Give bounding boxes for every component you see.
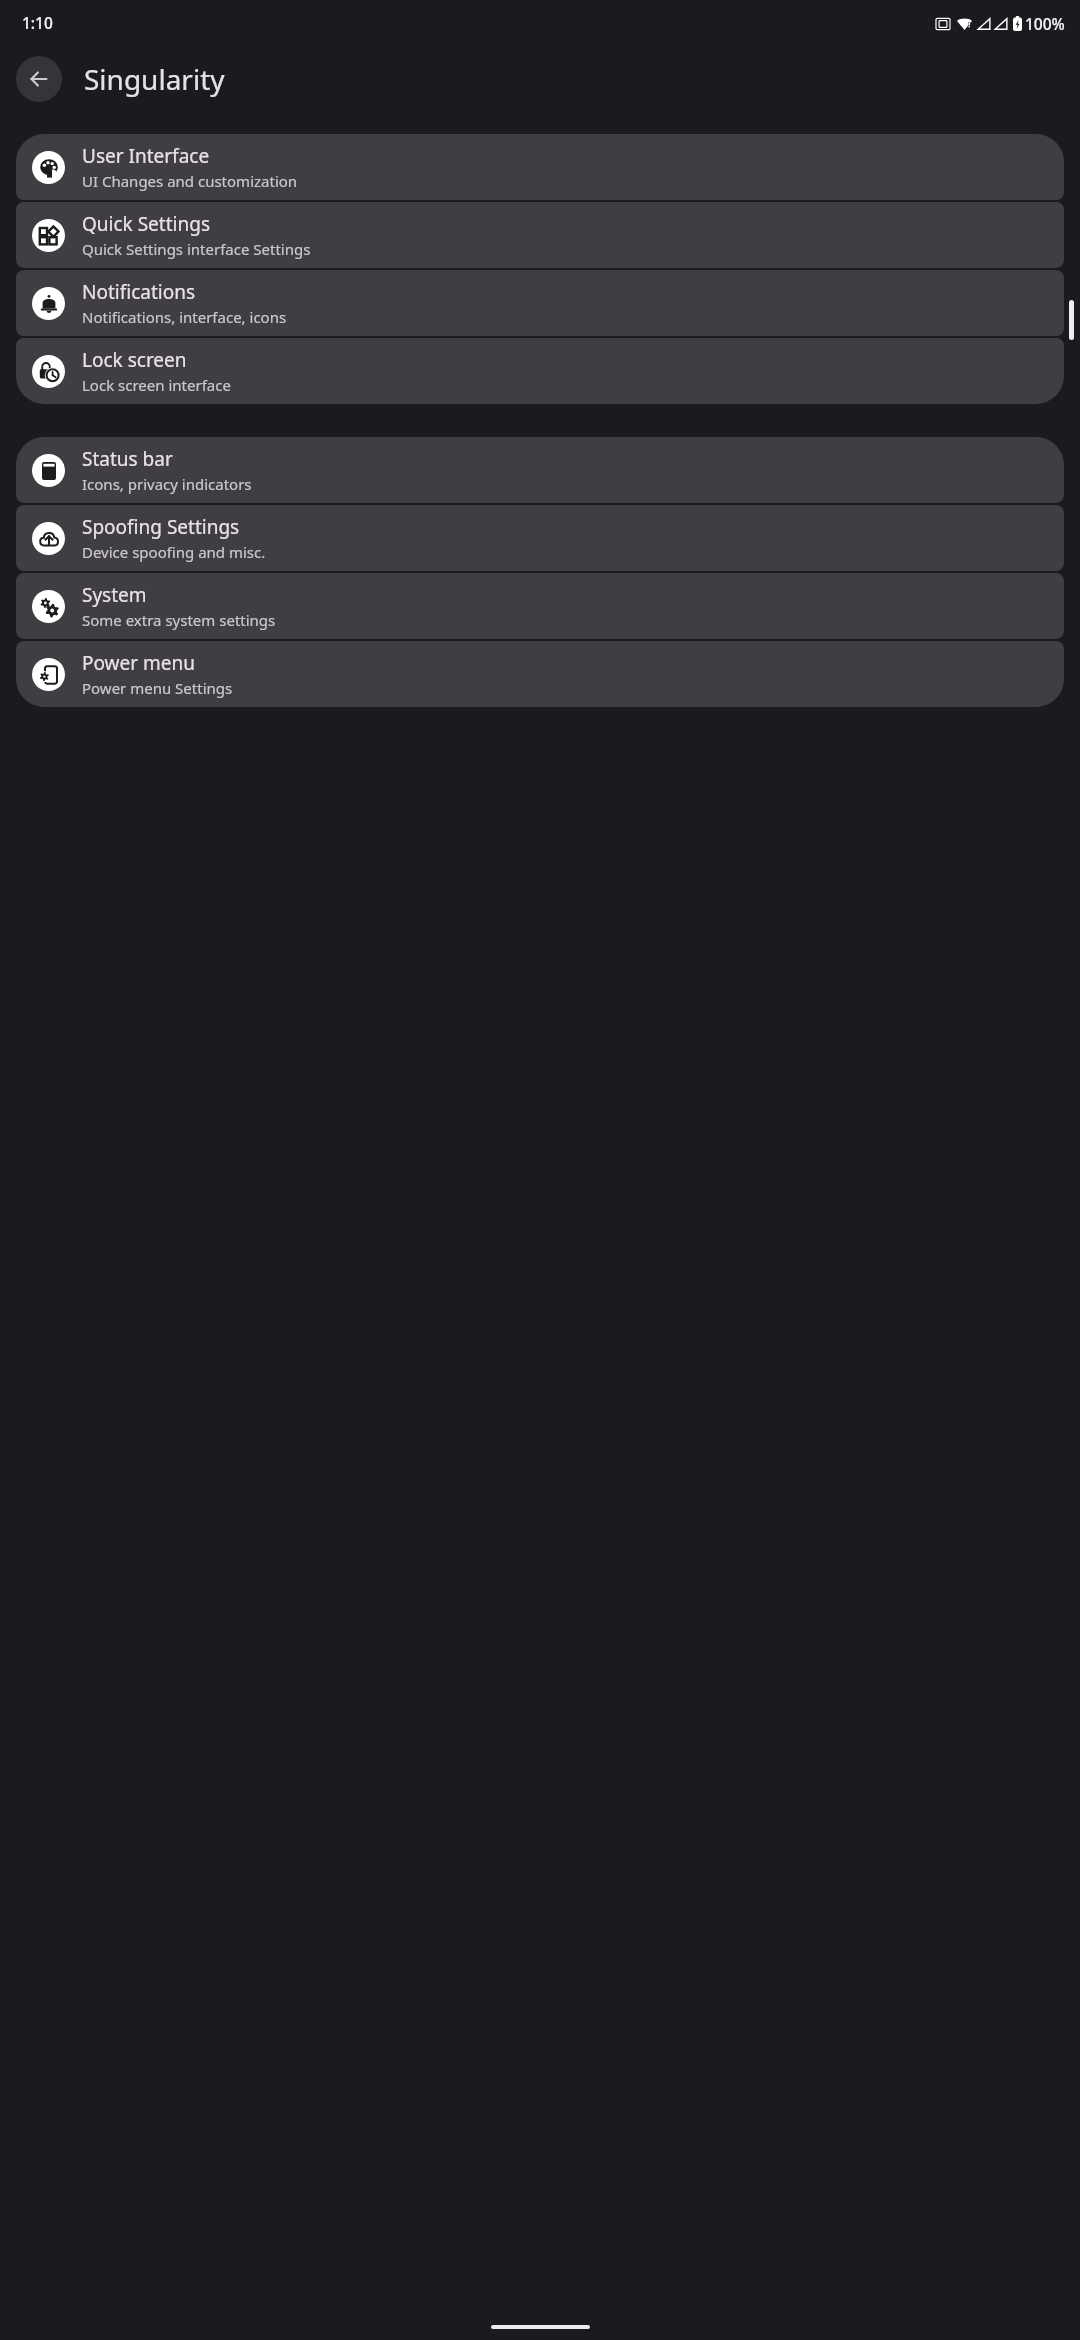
staticText: Status bar — [82, 446, 173, 472]
staticText: User Interface — [82, 143, 210, 169]
staticText: Device spoofing and misc. — [82, 542, 266, 562]
button[interactable]: Spoofing Settings — [16, 505, 1064, 571]
button[interactable]: Quick Settings — [16, 202, 1064, 268]
staticText: Quick Settings interface Settings — [82, 239, 311, 259]
staticText: Some extra system settings — [82, 610, 276, 630]
button[interactable]: Back — [16, 56, 62, 102]
button[interactable]: System — [16, 573, 1064, 639]
staticText: Power menu — [82, 650, 196, 676]
button[interactable]: Notifications — [16, 270, 1064, 336]
button[interactable]: User Interface — [16, 134, 1064, 200]
staticText: UI Changes and customization — [82, 171, 298, 191]
staticText: Lock screen interface — [82, 375, 231, 395]
button[interactable]: Power menu — [16, 641, 1064, 707]
staticText: 1:10 — [22, 12, 53, 33]
staticText: Lock screen — [82, 347, 187, 373]
staticText: Power menu Settings — [82, 678, 233, 698]
staticText: Singularity — [84, 60, 225, 98]
button[interactable]: Status bar — [16, 437, 1064, 503]
button[interactable]: Lock screen — [16, 338, 1064, 404]
staticText: Quick Settings — [82, 211, 210, 237]
staticText: Spoofing Settings — [82, 514, 240, 540]
staticText: Notifications — [82, 279, 196, 305]
staticText: Icons, privacy indicators — [82, 474, 252, 494]
staticText: Notifications, interface, icons — [82, 307, 287, 327]
staticText: 100% — [1025, 13, 1065, 34]
staticText: System — [82, 582, 147, 608]
